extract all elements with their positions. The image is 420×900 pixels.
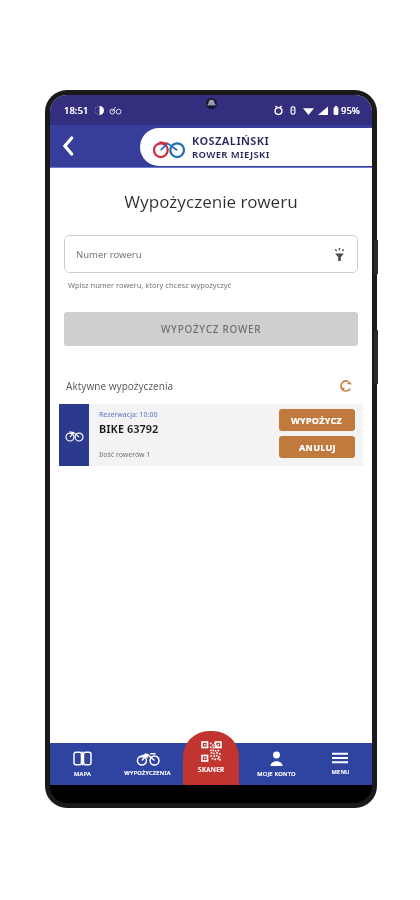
staticText: Wpisz numer roweru, który chcesz wypożyc… — [68, 280, 232, 290]
button[interactable]: WYPOŻYCZ — [279, 409, 355, 431]
button[interactable]: Rezerwacja: 10:00 — [59, 404, 363, 466]
staticText: 18:51 — [64, 104, 89, 117]
button[interactable]: Back — [50, 128, 86, 164]
staticText: Ilość rowerów 1 — [99, 450, 151, 460]
button[interactable]: Torch — [328, 243, 350, 265]
staticText: Numer roweru — [76, 248, 142, 261]
staticText: Wypożyczenie roweru — [50, 190, 372, 213]
staticText: ANULUJ — [299, 441, 336, 453]
staticText: 95% — [341, 104, 360, 117]
button[interactable]: WYPOŻYCZENIA — [115, 743, 180, 785]
button[interactable]: MOJE KONTO — [244, 743, 308, 785]
button[interactable]: SKANER — [183, 731, 239, 785]
button[interactable]: MENU — [308, 743, 372, 785]
staticText: Rezerwacja: 10:00 — [99, 410, 158, 420]
staticText: WYPOŻYCZ ROWER — [161, 322, 262, 336]
staticText: SKANER — [198, 765, 225, 774]
staticText: WYPOŻYCZ — [291, 414, 343, 426]
button[interactable]: ANULUJ — [279, 436, 355, 458]
staticText: WYPOŻYCZENIA — [124, 769, 171, 777]
staticText: KOSZALIŃSKI — [192, 133, 270, 148]
staticText: BIKE 63792 — [99, 421, 159, 436]
staticText: MENU — [331, 768, 350, 776]
staticText: Aktywne wypożyczenia — [66, 379, 174, 393]
button[interactable]: MAPA — [50, 743, 115, 785]
button[interactable]: Refresh — [336, 376, 356, 396]
staticText: ROWER MIEJSKI — [192, 148, 270, 161]
staticText: MOJE KONTO — [257, 770, 296, 778]
button[interactable]: Numer roweru — [64, 235, 358, 273]
button[interactable]: WYPOŻYCZ ROWER — [64, 312, 358, 346]
staticText: MAPA — [74, 770, 91, 778]
